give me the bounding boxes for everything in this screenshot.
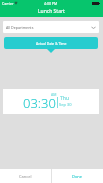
button[interactable]: All Departments [3, 21, 99, 33]
staticText: 03:30 [23, 94, 56, 112]
button[interactable]: Done [52, 169, 103, 183]
button[interactable]: 03:30 [3, 89, 99, 114]
staticText: 4:00 PM [44, 1, 58, 6]
staticText: Sep 30 [59, 102, 72, 107]
staticText: Actual Date & Time [36, 41, 67, 46]
staticText: Carrier [2, 1, 14, 6]
button[interactable]: Cancel [0, 169, 51, 183]
staticText: Cancel [19, 174, 32, 179]
staticText: Lunch Start [38, 8, 65, 15]
button[interactable]: Actual Date & Time [4, 37, 98, 49]
staticText: AM [51, 92, 57, 97]
staticText: Done [72, 174, 83, 179]
staticText: Thu [60, 95, 70, 102]
staticText: All Departments [6, 25, 34, 30]
